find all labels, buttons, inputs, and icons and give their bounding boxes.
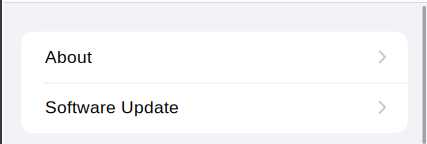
staticText: About	[45, 47, 92, 67]
button[interactable]: About	[21, 31, 408, 82]
staticText: Software Update	[45, 98, 179, 117]
button[interactable]: Software Update	[21, 83, 408, 133]
